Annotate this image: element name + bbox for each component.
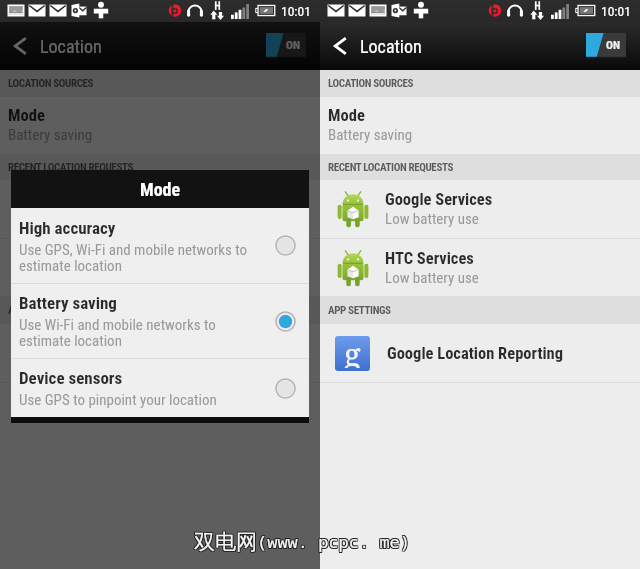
staticText: g [344,336,361,368]
staticText: Location [360,36,422,57]
staticText: (www. pcpc. me) [257,530,410,553]
button[interactable]: APP SETTINGS [320,297,640,323]
staticText: Mode [140,179,181,200]
staticText: LOCATION SOURCES [328,77,414,90]
staticText: Google Services [65,190,173,209]
button[interactable]: Location on [266,33,306,58]
staticText: 双电网 [194,530,257,556]
button[interactable]: Mode [320,97,640,154]
staticText: APP SETTINGS [8,304,71,317]
staticText: Mode [328,106,365,125]
button[interactable]: RECENT LOCATION REQUESTS [320,155,640,179]
staticText: Google Services [385,190,493,209]
staticText: Use GPS, Wi-Fi and mobile networks to es… [19,241,248,274]
staticText: Low battery use [385,210,479,228]
staticText: (www. pcpc. me) [256,531,409,554]
staticText: g [24,336,41,368]
staticText: Mode [8,106,45,125]
staticText: 双电网 [193,529,256,555]
staticText: Google Location Reporting [67,344,244,363]
button[interactable]: Google Services [320,180,640,238]
button[interactable]: Google Services [0,180,320,238]
staticText: (www. pcpc. me) [257,529,410,552]
staticText: 双电网 [195,530,258,556]
staticText: Battery saving [328,126,413,144]
staticText: HTC Services [65,249,154,268]
staticText: APP SETTINGS [328,304,391,317]
button[interactable]: APP SETTINGS [0,297,320,323]
staticText: Low battery use [65,210,159,228]
staticText: RECENT LOCATION REQUESTS [328,161,454,174]
staticText: Use Wi-Fi and mobile networks to estimat… [19,316,216,349]
staticText: 双电网 [195,529,258,555]
button[interactable]: High accuracy [11,208,309,283]
staticText: (www. pcpc. me) [258,529,411,552]
staticText: (www. pcpc. me) [256,530,409,553]
staticText: 双电网 [195,528,258,554]
staticText: 双电网 [193,528,256,554]
staticText: Location [40,36,102,57]
button[interactable]: Back [0,22,40,70]
button[interactable]: Location on [586,33,626,58]
staticText: Google Location Reporting [387,344,564,363]
button[interactable]: Mode [0,97,320,154]
button[interactable]: Battery saving [11,284,309,358]
staticText: 双电网 [193,530,256,556]
staticText: 双电网 [194,529,257,555]
staticText: High accuracy [19,218,116,238]
button[interactable]: Device sensors [11,359,309,417]
staticText: (www. pcpc. me) [257,531,410,554]
staticText: 10:01 [601,3,631,19]
staticText: (www. pcpc. me) [258,530,411,553]
staticText: 双电网 [194,528,257,554]
staticText: ON [606,38,620,51]
button[interactable]: g [0,324,320,382]
staticText: Low battery use [65,269,159,287]
staticText: (www. pcpc. me) [258,531,411,554]
staticText: RECENT LOCATION REQUESTS [8,161,134,174]
button[interactable]: Back [320,22,360,70]
staticText: ON [286,38,300,51]
button[interactable]: HTC Services [0,239,320,296]
button[interactable]: HTC Services [320,239,640,296]
button[interactable]: LOCATION SOURCES [0,70,320,96]
staticText: Device sensors [19,368,123,388]
button[interactable]: LOCATION SOURCES [320,70,640,96]
staticText: (www. pcpc. me) [256,529,409,552]
staticText: LOCATION SOURCES [8,77,94,90]
staticText: Use GPS to pinpoint your location [19,391,217,409]
button[interactable]: RECENT LOCATION REQUESTS [0,155,320,179]
staticText: Low battery use [385,269,479,287]
staticText: Battery saving [19,293,117,313]
staticText: 10:01 [281,3,311,19]
button[interactable]: g [320,324,640,382]
staticText: HTC Services [385,249,474,268]
staticText: Battery saving [8,126,93,144]
